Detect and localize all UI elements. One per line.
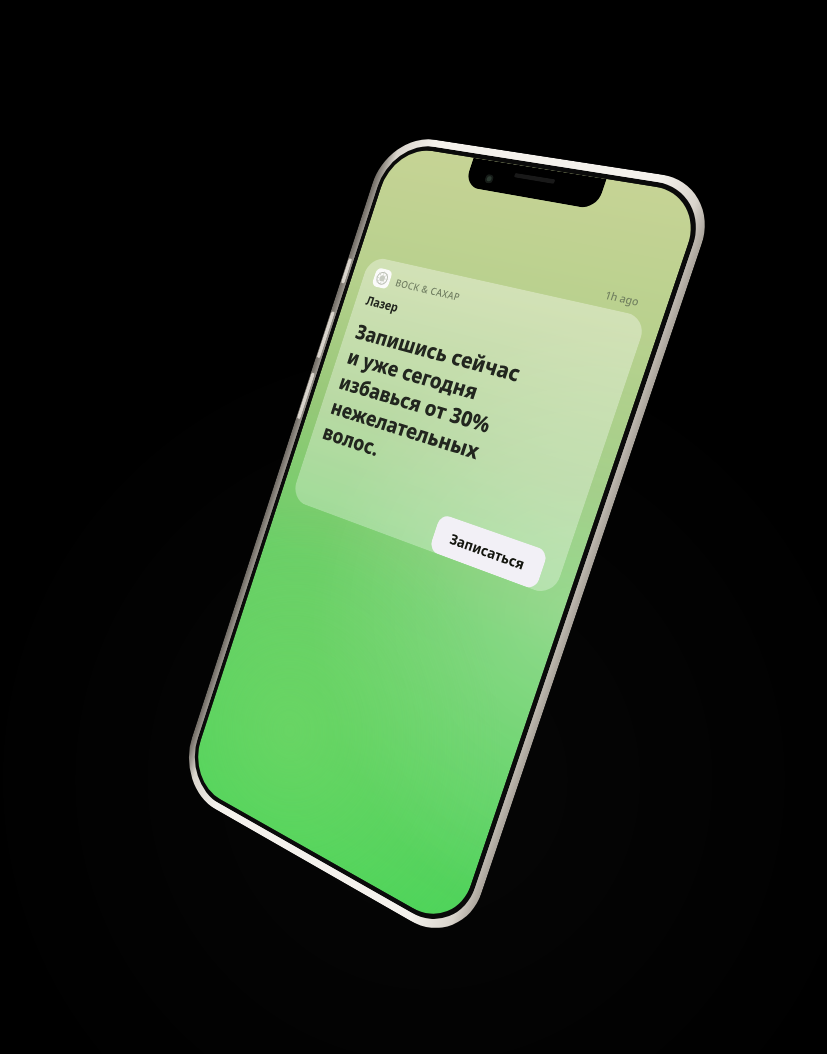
staticText: Лазер xyxy=(364,292,401,315)
button[interactable]: Volume down xyxy=(297,372,315,419)
staticText: 1h ago xyxy=(603,287,641,309)
staticText: Запишись сейчас и уже сегодня избавься о… xyxy=(320,317,525,496)
button[interactable]: ВОСК & САХАР xyxy=(291,256,648,597)
button[interactable]: Volume up xyxy=(316,311,335,358)
staticText: ВОСК & САХАР xyxy=(394,276,462,304)
staticText: Записаться xyxy=(448,529,528,574)
other: Mute switch xyxy=(341,258,352,284)
button[interactable]: Записаться xyxy=(428,513,549,590)
